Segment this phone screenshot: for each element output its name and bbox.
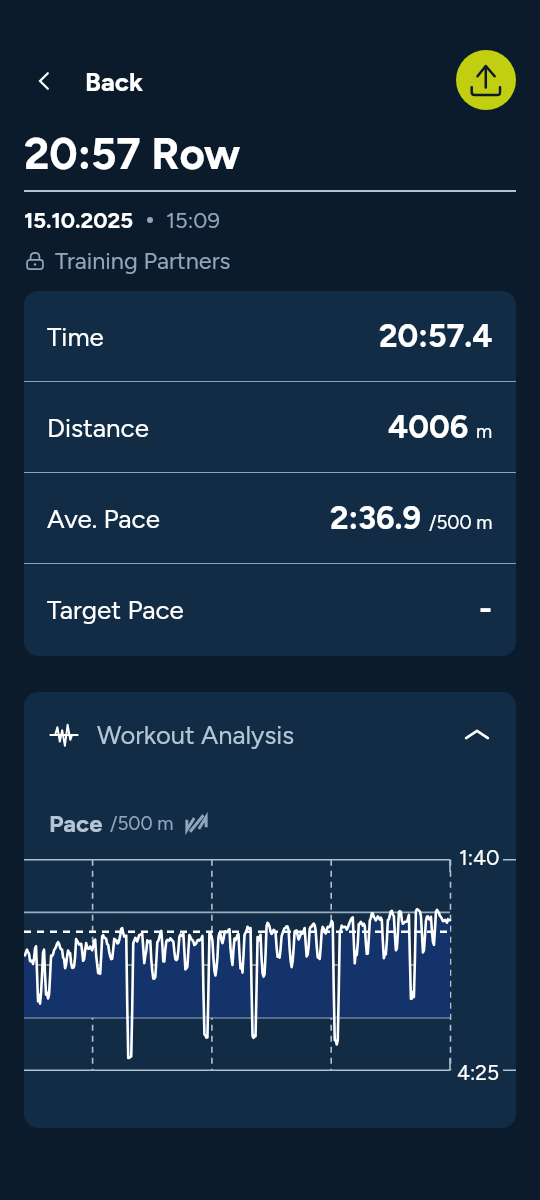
staticText: Workout Analysis [97, 720, 295, 751]
staticText: 15:09 [166, 207, 220, 233]
staticText: Pace [49, 809, 103, 838]
button[interactable]: Workout Analysis [24, 692, 516, 778]
staticText: /500 m [429, 511, 493, 534]
staticText: Back [85, 66, 143, 97]
button[interactable]: Back [26, 59, 143, 103]
staticText: 2:36.9 [330, 499, 422, 537]
staticText: m [476, 420, 493, 443]
button[interactable]: Distance [24, 382, 516, 472]
staticText: 15.10.2025 [24, 207, 134, 233]
button[interactable]: Share [456, 50, 516, 110]
staticText: - [479, 590, 493, 628]
staticText: Distance [47, 412, 149, 443]
staticText: Ave. Pace [47, 503, 160, 534]
button[interactable]: Ave. Pace [24, 473, 516, 563]
staticText: 4006 [388, 408, 469, 446]
staticText: 1:40 [459, 845, 500, 870]
staticText: /500 m [110, 812, 174, 835]
button[interactable]: Collapse [460, 718, 494, 752]
staticText: 20:57 Row [24, 127, 241, 179]
staticText: 4:25 [457, 1060, 500, 1085]
button[interactable]: Target Pace [24, 564, 516, 654]
button[interactable]: Time [24, 291, 516, 381]
staticText: Time [47, 321, 104, 352]
staticText: Target Pace [47, 594, 184, 625]
staticText: Training Partners [55, 247, 231, 275]
button[interactable]: Training Partners [24, 245, 231, 277]
staticText: 20:57.4 [379, 317, 493, 355]
